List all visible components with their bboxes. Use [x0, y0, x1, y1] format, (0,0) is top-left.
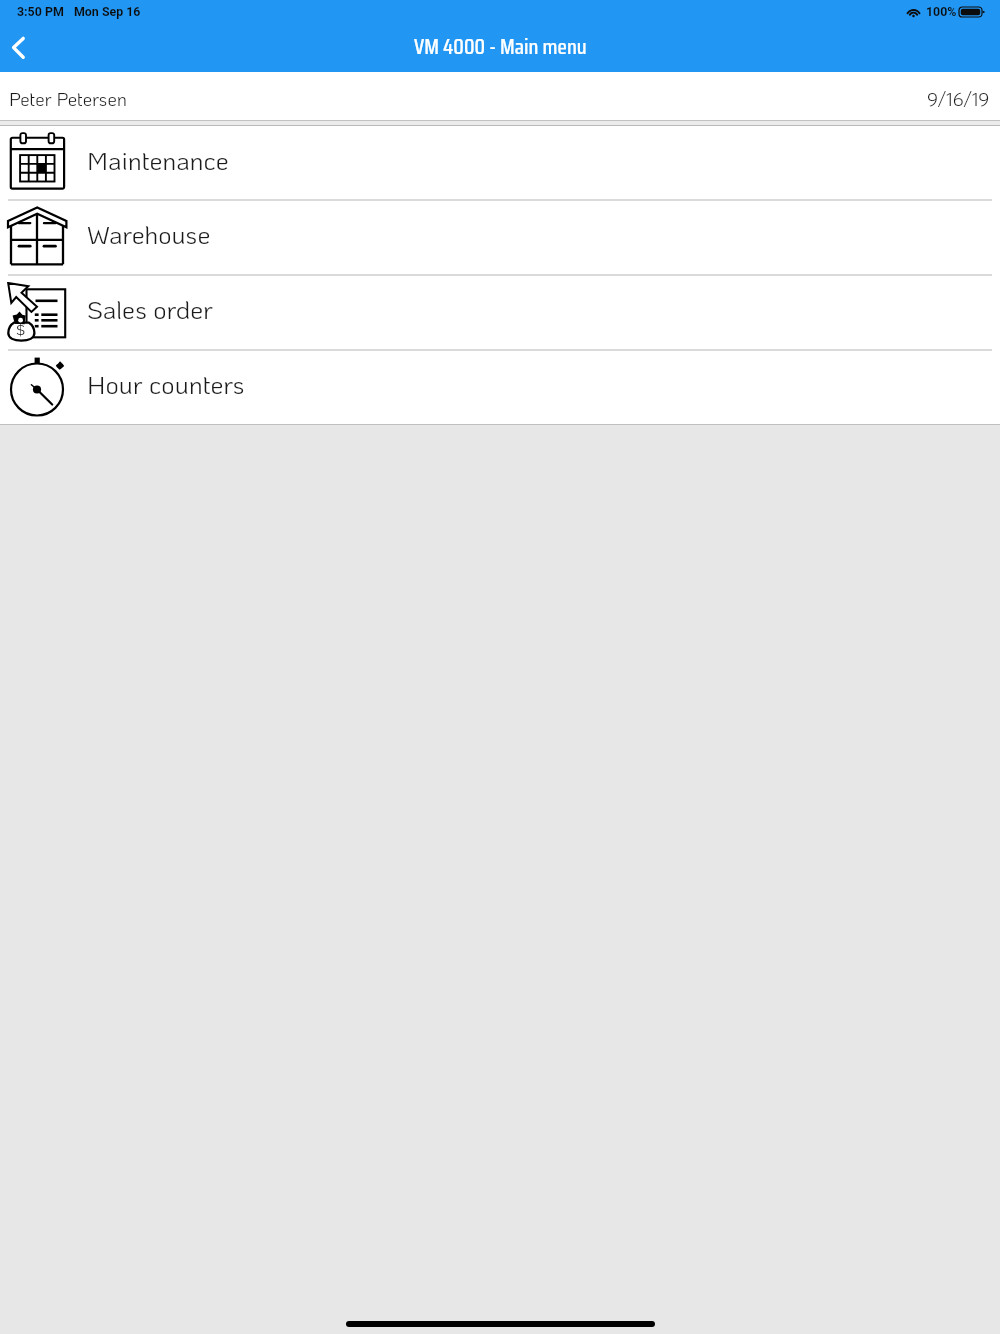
- staticText: Mon Sep 16: [74, 4, 141, 19]
- staticText: $: [16, 320, 26, 339]
- staticText: Warehouse: [87, 217, 211, 250]
- button[interactable]: $: [0, 275, 1000, 350]
- button[interactable]: Maintenance: [0, 126, 1000, 200]
- staticText: Hour counters: [87, 367, 245, 400]
- staticText: Peter Petersen: [9, 86, 127, 110]
- staticText: Sales order: [87, 292, 213, 325]
- staticText: 9/16/19: [927, 86, 990, 110]
- staticText: Maintenance: [87, 143, 229, 176]
- button[interactable]: Warehouse: [0, 200, 1000, 275]
- staticText: 3:50 PM: [17, 4, 64, 19]
- staticText: VM 4000 - Main menu: [414, 29, 587, 63]
- button[interactable]: Back: [0, 26, 46, 72]
- button[interactable]: Hour counters: [0, 350, 1000, 424]
- staticText: 100%: [926, 4, 957, 19]
